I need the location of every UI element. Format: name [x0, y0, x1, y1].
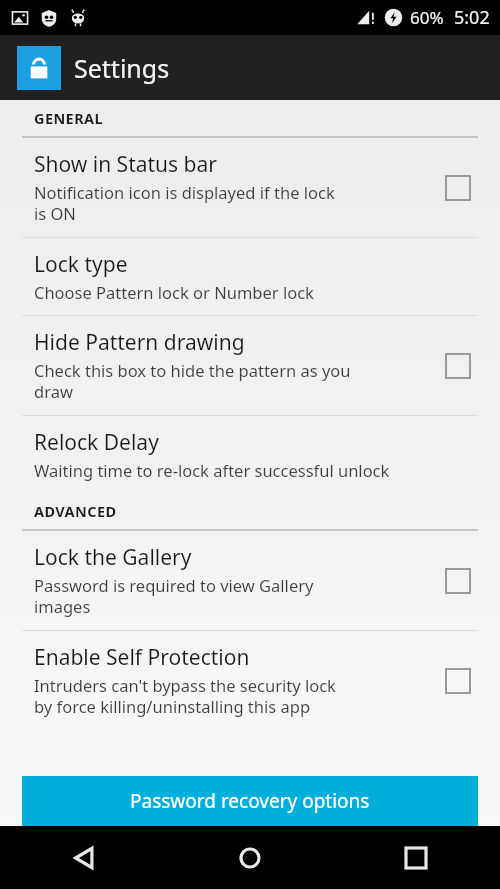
- staticText: Waiting time to re-lock after successful…: [34, 459, 390, 481]
- button[interactable]: Password recovery options: [22, 776, 478, 826]
- button[interactable]: Show in Status bar: [0, 138, 500, 237]
- staticText: Lock type: [34, 250, 128, 279]
- staticText: Settings: [74, 51, 170, 85]
- button[interactable]: Hide Pattern drawing: [436, 344, 480, 388]
- staticText: 5:02: [454, 5, 490, 30]
- button[interactable]: Hide Pattern drawing: [0, 316, 500, 415]
- staticText: Show in Status bar: [34, 150, 217, 179]
- staticText: Hide Pattern drawing: [34, 328, 245, 357]
- button[interactable]: Back: [60, 834, 108, 882]
- staticText: 60%: [410, 6, 444, 29]
- button[interactable]: Enable Self Protection: [436, 659, 480, 703]
- button[interactable]: Home: [226, 834, 274, 882]
- button[interactable]: Lock type: [0, 238, 500, 315]
- button[interactable]: Lock the Gallery: [0, 531, 500, 630]
- staticText: Choose Pattern lock or Number lock: [34, 281, 314, 303]
- button[interactable]: Enable Self Protection: [0, 631, 500, 730]
- staticText: Relock Delay: [34, 428, 159, 457]
- button[interactable]: Lock the Gallery: [436, 559, 480, 603]
- staticText: Check this box to hide the pattern as yo…: [34, 359, 351, 403]
- button[interactable]: Recent apps: [392, 834, 440, 882]
- staticText: Intruders can't bypass the security lock…: [34, 674, 336, 718]
- staticText: Password recovery options: [130, 788, 370, 814]
- staticText: ADVANCED: [34, 501, 117, 521]
- staticText: Notification icon is displayed if the lo…: [34, 181, 335, 225]
- button[interactable]: Relock Delay: [0, 416, 500, 493]
- button[interactable]: Show in Status bar: [436, 166, 480, 210]
- staticText: Lock the Gallery: [34, 543, 192, 572]
- staticText: Password is required to view Gallery ima…: [34, 574, 314, 618]
- staticText: GENERAL: [34, 108, 103, 128]
- staticText: Enable Self Protection: [34, 643, 250, 672]
